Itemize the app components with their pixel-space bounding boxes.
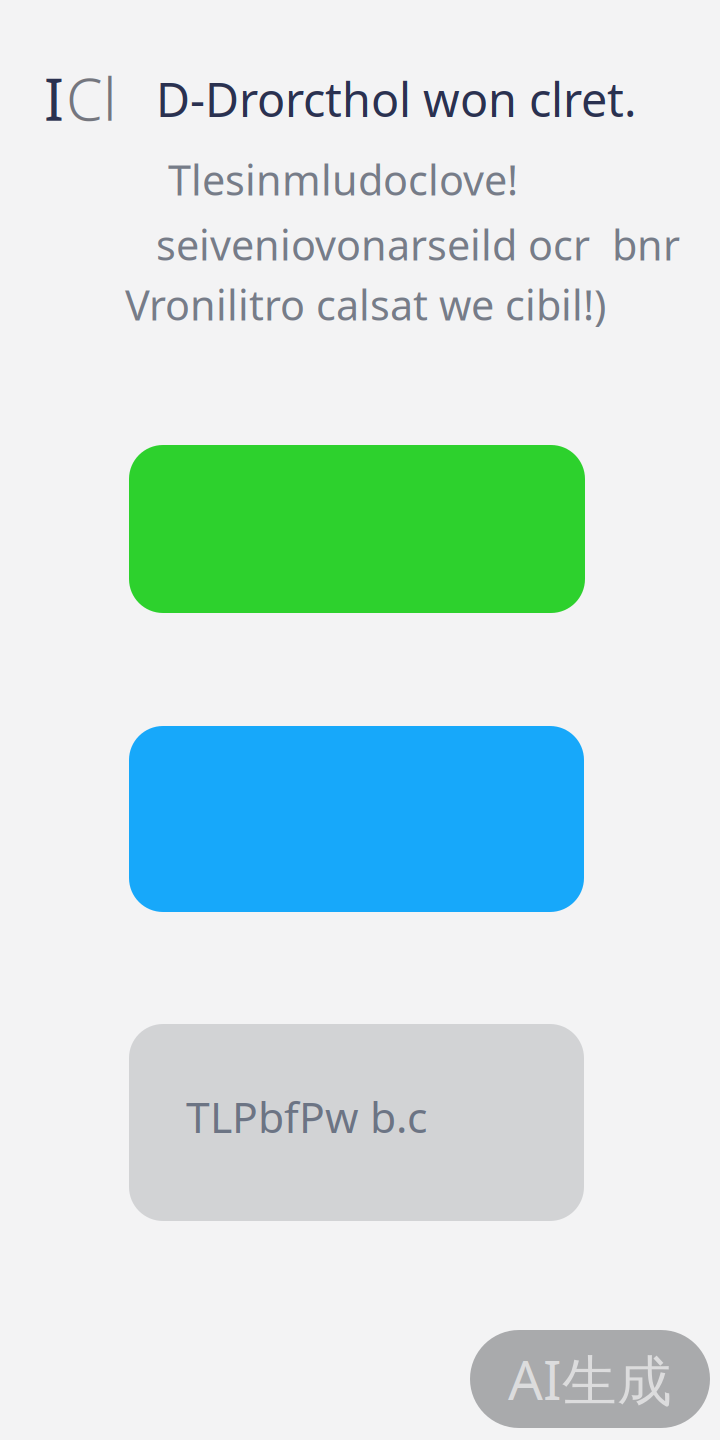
staticText: Tlesinmludoclove! bbox=[168, 152, 518, 207]
staticText: AI生成 bbox=[508, 1343, 672, 1415]
staticText: Cl bbox=[66, 59, 117, 137]
button[interactable]: Continue bbox=[129, 445, 585, 613]
staticText: D-Drorcthol won clret. bbox=[156, 68, 637, 130]
staticText: TLPbfPw b.c bbox=[186, 1088, 427, 1145]
staticText: Vronilitro calsat we cibil!) bbox=[125, 277, 606, 332]
button[interactable]: Back bbox=[44, 59, 117, 137]
button[interactable]: TLPbfPw b.c bbox=[129, 1024, 584, 1221]
button[interactable]: Share bbox=[129, 726, 584, 912]
staticText: I bbox=[44, 59, 64, 137]
staticText: seiveniovonarseild ocr bnr bbox=[156, 217, 680, 272]
